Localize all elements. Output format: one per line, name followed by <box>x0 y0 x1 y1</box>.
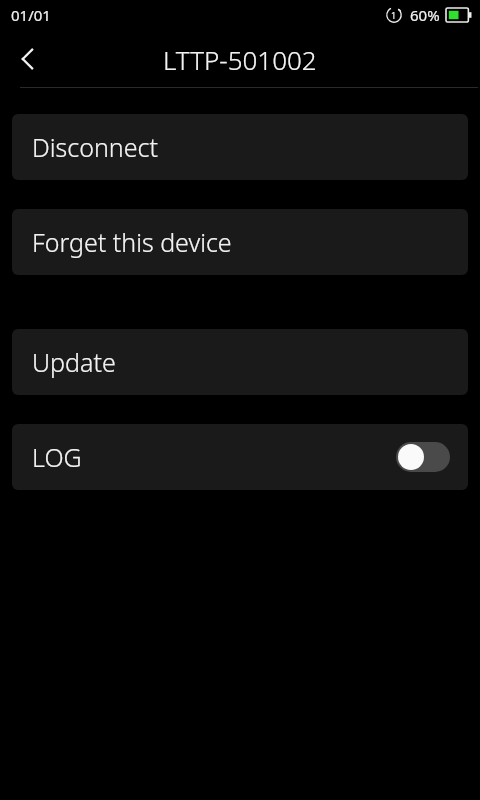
staticText: 1 <box>391 9 397 21</box>
staticText: Forget this device <box>32 225 232 259</box>
button[interactable]: Disconnect <box>12 114 468 180</box>
staticText: LTTP-501002 <box>163 42 317 77</box>
button[interactable]: LOG toggle, off <box>396 442 450 472</box>
staticText: LOG <box>32 440 82 474</box>
button[interactable]: LOG <box>12 424 468 490</box>
button[interactable]: Back <box>0 31 56 87</box>
staticText: Update <box>32 345 116 379</box>
button[interactable]: Forget this device <box>12 209 468 275</box>
staticText: 60% <box>410 5 440 25</box>
button[interactable]: Update <box>12 329 468 395</box>
staticText: Disconnect <box>32 130 158 164</box>
staticText: 01/01 <box>11 5 51 25</box>
